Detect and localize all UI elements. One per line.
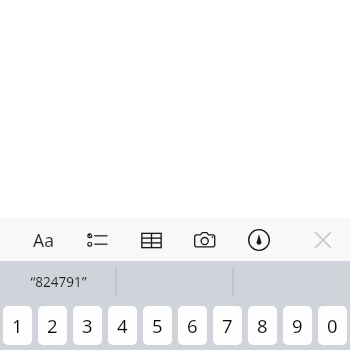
button[interactable]: Insert table [134,223,168,257]
button[interactable]: 3 [73,306,102,345]
staticText: 6 [187,313,198,338]
staticText: 4 [117,313,128,338]
button[interactable]: 7 [213,306,242,345]
button[interactable]: 9 [283,306,312,345]
staticText: 8 [257,313,268,338]
button[interactable]: 4 [108,306,137,345]
staticText: 9 [292,313,303,338]
staticText: 2 [47,313,58,338]
button[interactable]: 6 [178,306,207,345]
button[interactable]: 0 [318,306,347,345]
button[interactable]: 5 [143,306,172,345]
staticText: Aa [33,228,54,252]
button[interactable]: 2 [38,306,67,345]
button[interactable]: Markup [242,223,276,257]
button[interactable]: Checklist [80,223,114,257]
staticText: 3 [82,313,93,338]
button[interactable]: 1 [3,306,32,345]
staticText: “824791” [30,273,87,291]
button[interactable]: 8 [248,306,277,345]
staticText: 5 [152,313,163,338]
button[interactable]: Close keyboard [306,223,340,257]
staticText: 0 [327,313,338,338]
button[interactable]: Text formatting [26,223,60,257]
button[interactable]: Camera [188,223,222,257]
staticText: 1 [12,313,23,338]
staticText: 7 [222,313,233,338]
button[interactable]: “824791” [0,261,116,302]
